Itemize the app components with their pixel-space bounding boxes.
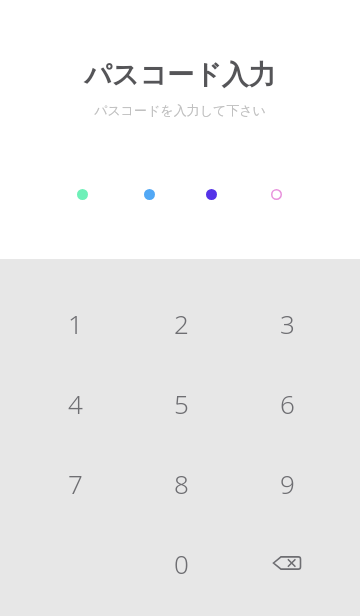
staticText: パスコードを入力して下さい xyxy=(0,102,360,118)
staticText: 1 xyxy=(68,306,83,341)
button[interactable]: 0 xyxy=(128,523,234,603)
button[interactable]: 1 xyxy=(22,283,128,363)
button[interactable]: 5 xyxy=(128,363,234,443)
staticText: 8 xyxy=(174,466,189,501)
button[interactable]: 7 xyxy=(22,443,128,523)
staticText: 9 xyxy=(280,466,295,501)
button[interactable]: Backspace xyxy=(234,523,340,603)
button[interactable]: 4 xyxy=(22,363,128,443)
staticText: 0 xyxy=(174,546,189,581)
button[interactable]: 6 xyxy=(234,363,340,443)
staticText: 2 xyxy=(174,306,189,341)
button[interactable]: 3 xyxy=(234,283,340,363)
button[interactable]: 9 xyxy=(234,443,340,523)
staticText: 5 xyxy=(174,386,189,421)
staticText: 3 xyxy=(280,306,295,341)
button[interactable]: 8 xyxy=(128,443,234,523)
button[interactable]: 2 xyxy=(128,283,234,363)
staticText: パスコード入力 xyxy=(0,58,360,92)
staticText: 4 xyxy=(68,386,83,421)
staticText: 6 xyxy=(280,386,295,421)
staticText: 7 xyxy=(68,466,83,501)
